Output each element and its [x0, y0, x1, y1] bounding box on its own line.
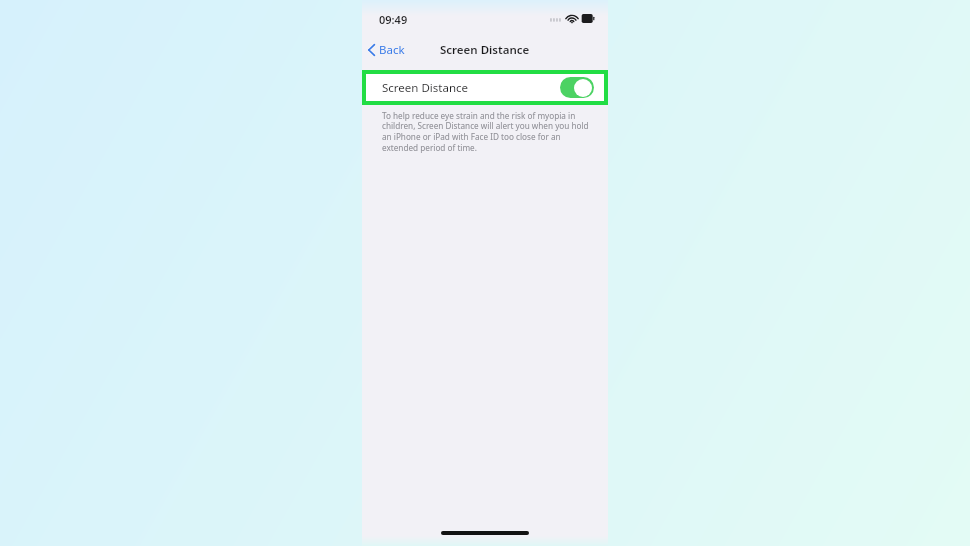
- staticText: Screen Distance: [382, 80, 560, 96]
- staticText: Screen Distance: [440, 42, 530, 58]
- button[interactable]: Screen Distance: [366, 74, 604, 101]
- button[interactable]: Back: [366, 39, 407, 61]
- staticText: 09:49: [379, 12, 408, 27]
- staticText: To help reduce eye strain and the risk o…: [382, 110, 592, 154]
- staticText: Back: [379, 42, 405, 58]
- button[interactable]: Screen Distance toggle, on: [560, 77, 594, 98]
